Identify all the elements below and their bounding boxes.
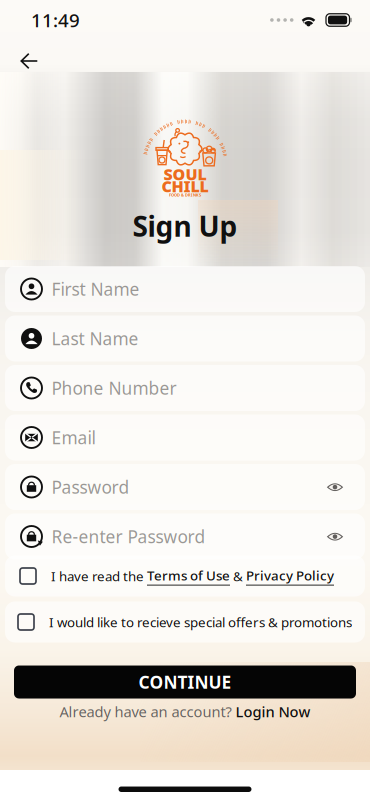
staticText: Login Now xyxy=(235,702,310,721)
button[interactable]: Already have an account? xyxy=(59,701,310,721)
staticText: Already have an account? xyxy=(59,702,231,721)
staticText: Password xyxy=(51,475,129,498)
button[interactable]: First Name xyxy=(5,266,365,312)
staticText: Last Name xyxy=(51,327,138,350)
button[interactable]: Back xyxy=(7,46,51,76)
staticText: SOUL xyxy=(163,163,206,185)
staticText: Re-enter Password xyxy=(51,525,205,548)
staticText: Terms of Use xyxy=(147,566,230,584)
staticText: Privacy Policy xyxy=(246,566,334,584)
staticText: Email xyxy=(51,426,95,449)
button[interactable]: Last Name xyxy=(5,315,365,361)
staticText: CHILL xyxy=(161,175,208,197)
staticText: Phone Number xyxy=(51,376,176,399)
staticText: FOOD & DRINKS xyxy=(169,192,201,198)
staticText: Sign Up xyxy=(132,207,237,245)
button[interactable]: Re-enter Password xyxy=(5,513,365,559)
button[interactable]: Password xyxy=(5,464,365,510)
button[interactable]: I have read the xyxy=(5,555,365,596)
staticText: & xyxy=(230,567,246,585)
staticText: I have read the xyxy=(51,567,147,585)
staticText: First Name xyxy=(51,277,139,300)
button[interactable]: CONTINUE xyxy=(14,665,356,698)
staticText: I would like to recieve special offers &… xyxy=(49,613,352,631)
staticText: 11:49 xyxy=(31,8,80,32)
button[interactable]: Phone Number xyxy=(5,365,365,411)
staticText: CONTINUE xyxy=(138,670,231,693)
button[interactable]: Email xyxy=(5,414,365,460)
button[interactable]: I would like to recieve special offers &… xyxy=(5,601,365,642)
